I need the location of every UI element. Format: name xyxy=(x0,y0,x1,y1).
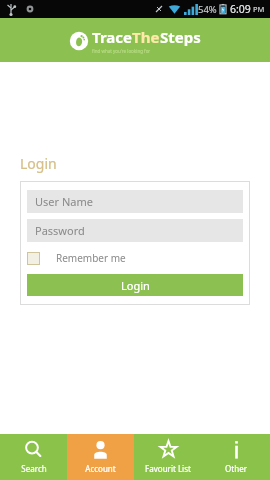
staticText: Other xyxy=(225,463,247,474)
staticText: Search xyxy=(21,463,47,474)
staticText: The xyxy=(132,27,160,47)
staticText: Login xyxy=(121,278,150,293)
staticText: User Name xyxy=(35,194,93,209)
staticText: 6:09 xyxy=(230,2,251,16)
button[interactable]: Account xyxy=(67,434,134,480)
button[interactable]: Login xyxy=(27,274,243,296)
staticText: Account xyxy=(85,463,116,474)
other: Search xyxy=(24,440,43,459)
other: Favourit List xyxy=(159,440,178,459)
button[interactable]: Favourit List xyxy=(134,434,202,480)
button[interactable]: Other xyxy=(202,434,270,480)
other: Account xyxy=(91,440,110,459)
staticText: Remember me xyxy=(56,251,126,265)
button[interactable]: Search xyxy=(0,434,67,480)
staticText: PM xyxy=(253,4,265,14)
other: Other xyxy=(227,440,246,459)
staticText: Password xyxy=(35,223,85,238)
staticText: Favourit List xyxy=(145,463,191,474)
button[interactable]: Remember me xyxy=(27,249,126,267)
staticText: Trace xyxy=(92,27,132,47)
staticText: 54% xyxy=(198,3,217,16)
staticText: find what you're looking for xyxy=(92,48,151,54)
staticText: Steps xyxy=(160,27,201,47)
staticText: Login xyxy=(20,154,57,173)
button[interactable]: Password xyxy=(27,219,243,242)
button[interactable]: User Name xyxy=(27,190,243,213)
